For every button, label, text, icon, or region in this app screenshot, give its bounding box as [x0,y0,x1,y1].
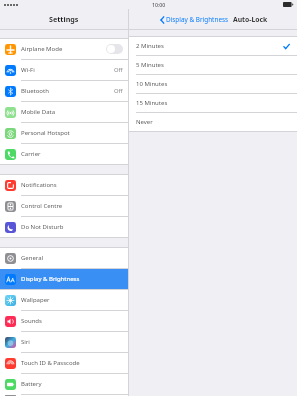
staticText: Carrier [21,150,123,158]
button[interactable]: Sounds [0,311,128,331]
button[interactable]: Personal Hotspot [0,123,128,143]
staticText: 10:00 [152,1,166,8]
staticText: Auto-Lock [233,15,268,24]
button[interactable]: General [0,248,128,268]
staticText: Display & Brightness [21,275,123,283]
staticText: Sounds [21,317,123,325]
button[interactable]: 10 Minutes [129,75,297,93]
button[interactable]: Battery [0,374,128,394]
button[interactable]: Carrier [0,144,128,164]
button[interactable]: Do Not Disturb [0,217,128,237]
button[interactable]: Siri [0,332,128,352]
button[interactable]: Never [129,113,297,131]
staticText: Battery [21,380,123,388]
staticText: Off [114,87,123,95]
button[interactable]: 15 Minutes [129,94,297,112]
button[interactable]: Wallpaper [0,290,128,310]
staticText: Settings [49,14,79,24]
staticText: Do Not Disturb [21,223,123,231]
staticText: Bluetooth [21,87,114,95]
staticText: Mobile Data [21,108,123,116]
button[interactable]: Display & Brightness [0,269,128,289]
staticText: Off [114,66,123,74]
staticText: Personal Hotspot [21,129,123,137]
button[interactable]: Touch ID & Passcode [0,353,128,373]
staticText: Never [136,118,290,126]
staticText: 5 Minutes [136,61,290,69]
staticText: Airplane Mode [21,45,106,53]
button[interactable]: Airplane Mode [0,39,128,59]
staticText: General [21,254,123,262]
staticText: Siri [21,338,123,346]
button[interactable]: Airplane Mode toggle [107,45,122,53]
staticText: 10 Minutes [136,80,290,88]
staticText: Touch ID & Passcode [21,359,123,367]
staticText: Notifications [21,181,123,189]
staticText: Wallpaper [21,296,123,304]
staticText: 2 Minutes [136,42,283,50]
button[interactable]: Control Centre [0,196,128,216]
button[interactable]: 5 Minutes [129,56,297,74]
button[interactable]: 2 Minutes [129,37,297,55]
button[interactable]: Notifications [0,175,128,195]
staticText: Wi-Fi [21,66,114,74]
button[interactable]: Mobile Data [0,102,128,122]
staticText: Display & Brightness [166,15,229,24]
staticText: 15 Minutes [136,99,290,107]
button[interactable]: Display & Brightness [159,15,230,24]
button[interactable]: Wi-Fi [0,60,128,80]
staticText: Control Centre [21,202,123,210]
button[interactable]: Privacy [0,395,128,396]
button[interactable]: Bluetooth [0,81,128,101]
